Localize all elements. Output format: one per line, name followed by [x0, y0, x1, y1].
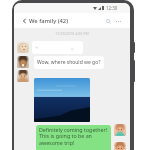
button[interactable]: Search	[103, 16, 113, 26]
button[interactable]	[34, 78, 90, 122]
staticText: 12:30	[106, 5, 118, 11]
staticText: We family (42)	[29, 17, 68, 25]
staticText: Definitely coming together! This is goin…	[39, 126, 109, 147]
button[interactable]: Back	[20, 17, 28, 25]
button[interactable]: More options	[113, 16, 123, 26]
staticText: Wow, where should we go?	[37, 59, 101, 66]
button[interactable]: Definitely coming together! This is goin…	[36, 125, 111, 150]
button[interactable]: Wow, where should we go?	[34, 56, 104, 69]
staticText: 11/25/2018 4:03 PM	[14, 31, 130, 36]
